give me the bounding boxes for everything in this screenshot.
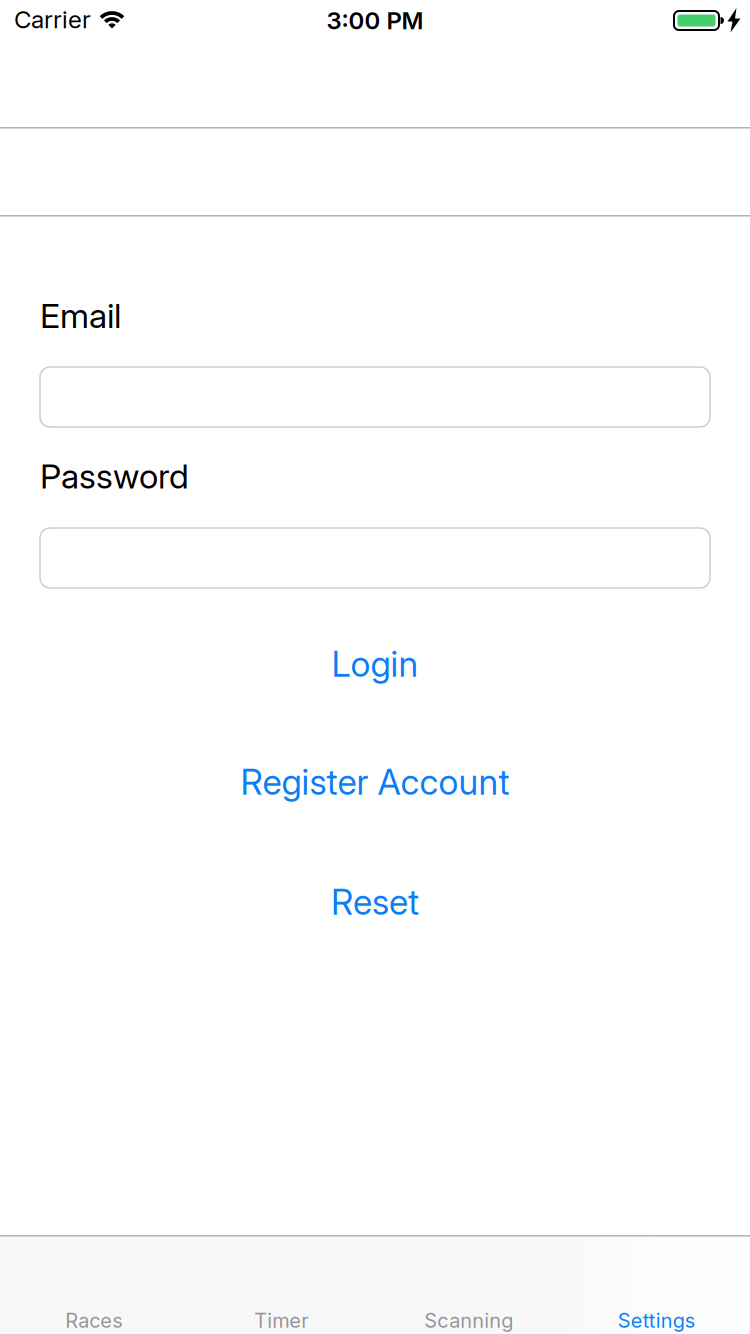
staticText: Races <box>65 1308 122 1332</box>
button[interactable]: Login <box>0 634 750 694</box>
button[interactable]: Settings <box>562 1236 750 1332</box>
staticText: 3:00 PM <box>326 6 423 35</box>
staticText: Carrier <box>14 5 91 34</box>
staticText: Timer <box>254 1308 308 1332</box>
button[interactable] <box>40 528 710 588</box>
staticText: Email <box>40 295 121 336</box>
staticText: Register Account <box>240 761 509 803</box>
button[interactable]: Timer <box>187 1236 375 1332</box>
staticText: Reset <box>331 881 419 923</box>
button[interactable]: Reset <box>0 872 750 932</box>
staticText: Password <box>40 455 189 497</box>
button[interactable]: Races <box>0 1236 187 1332</box>
button[interactable] <box>40 367 710 427</box>
button[interactable]: Scanning <box>375 1236 562 1332</box>
button[interactable]: Register Account <box>0 752 750 812</box>
staticText: Login <box>331 643 418 685</box>
staticText: Settings <box>618 1308 695 1332</box>
staticText: Scanning <box>424 1308 513 1332</box>
